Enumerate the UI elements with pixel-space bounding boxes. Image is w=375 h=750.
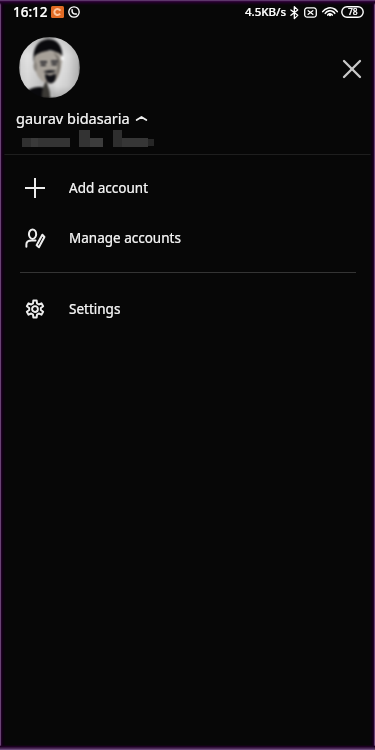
staticText: 16:12 — [13, 3, 48, 21]
staticText: gaurav bidasaria — [16, 108, 130, 128]
staticText: Manage accounts — [69, 229, 181, 247]
button[interactable]: Close — [332, 49, 372, 89]
button[interactable]: Add account — [0, 163, 375, 213]
staticText: 78 — [348, 6, 358, 18]
staticText: Add account — [69, 179, 149, 197]
staticText: Settings — [69, 300, 121, 318]
button[interactable]: gaurav bidasaria — [16, 106, 147, 130]
staticText: 4.5KB/s — [245, 4, 287, 20]
button[interactable]: Profile picture — [19, 37, 80, 98]
button[interactable]: Settings — [0, 284, 375, 334]
button[interactable]: Manage accounts — [0, 213, 375, 263]
